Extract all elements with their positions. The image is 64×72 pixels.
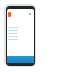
button[interactable]: [7, 36, 34, 39]
button[interactable]: Status: [7, 9, 34, 19]
button[interactable]: [7, 56, 34, 63]
button[interactable]: [7, 27, 34, 30]
button[interactable]: [7, 33, 34, 36]
button[interactable]: [7, 39, 34, 42]
button[interactable]: [7, 30, 34, 33]
